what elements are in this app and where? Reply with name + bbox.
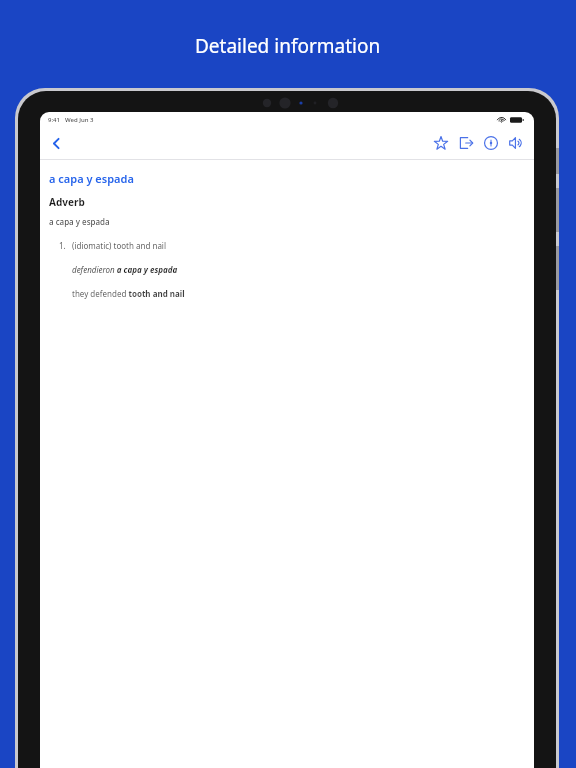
staticText: 9:41 (48, 116, 60, 124)
staticText: Adverb (49, 195, 85, 209)
button[interactable]: a capa y espada (49, 171, 134, 186)
button[interactable]: Favorite (428, 129, 453, 157)
staticText: Wed Jun 3 (65, 116, 94, 124)
staticText: Detailed information (195, 33, 381, 59)
staticText: 1. (59, 240, 66, 251)
button[interactable]: Export (453, 129, 478, 157)
staticText: a capa y espada (49, 216, 110, 227)
button[interactable]: Back (42, 129, 70, 157)
staticText: defendieron a capa y espada (72, 264, 178, 275)
button[interactable]: Details (478, 129, 503, 157)
staticText: (idiomatic) tooth and nail (72, 240, 166, 251)
staticText: they defended tooth and nail (72, 288, 185, 299)
button[interactable]: Pronounce (503, 129, 528, 157)
